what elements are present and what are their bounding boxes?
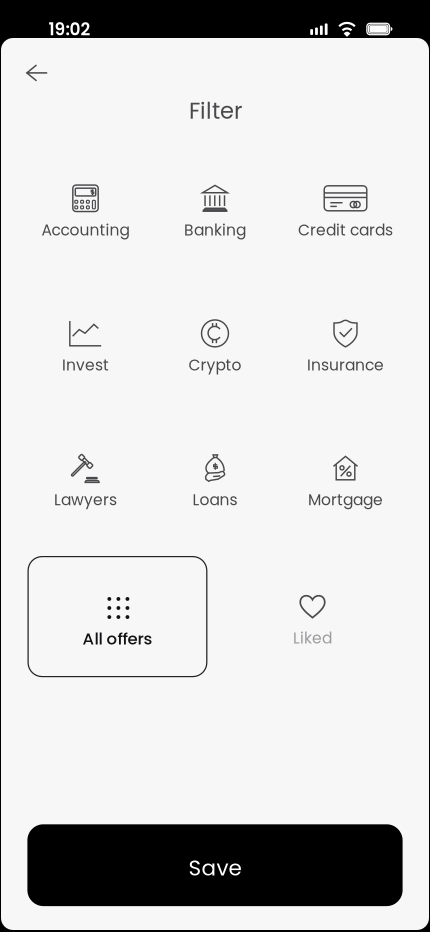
button[interactable]: Banking — [150, 148, 280, 248]
staticText: Insurance — [307, 354, 384, 376]
staticText: Credit cards — [298, 219, 393, 241]
staticText: Filter — [189, 95, 242, 127]
staticText: Invest — [62, 354, 109, 376]
button[interactable]: Accounting — [20, 148, 150, 248]
staticText: Loans — [192, 489, 237, 511]
button[interactable]: Save — [27, 824, 403, 906]
staticText: Lawyers — [54, 489, 117, 511]
staticText: Save — [188, 853, 241, 883]
staticText: All offers — [82, 627, 152, 650]
button[interactable]: All offers — [28, 557, 207, 677]
button[interactable]: Mortgage — [280, 418, 410, 518]
button[interactable]: Invest — [20, 283, 150, 383]
staticText: Banking — [184, 219, 246, 241]
button[interactable]: Liked — [223, 557, 402, 677]
button[interactable]: Loans — [150, 418, 280, 518]
button[interactable]: Credit cards — [280, 148, 410, 248]
staticText: Liked — [293, 627, 332, 649]
staticText: 19:02 — [48, 17, 90, 41]
button[interactable]: Lawyers — [20, 418, 150, 518]
button[interactable]: Back — [14, 51, 60, 95]
button[interactable]: Crypto — [150, 283, 280, 383]
staticText: Mortgage — [308, 489, 383, 511]
staticText: Accounting — [41, 219, 129, 241]
staticText: Crypto — [188, 354, 241, 376]
button[interactable]: Insurance — [280, 283, 410, 383]
